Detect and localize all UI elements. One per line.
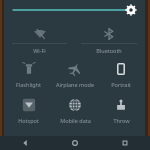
- staticText: Bluetooth: [96, 47, 122, 54]
- button[interactable]: Throw: [98, 93, 144, 129]
- button[interactable]: Wi-Fi: [5, 24, 74, 57]
- staticText: Portrait: [111, 81, 131, 88]
- staticText: Flashlight: [16, 81, 41, 88]
- staticText: Throw: [113, 117, 130, 124]
- button[interactable]: Mobile data: [52, 93, 98, 129]
- button[interactable]: Airplane mode: [52, 57, 98, 93]
- button[interactable]: Brightness: [5, 0, 144, 20]
- button[interactable]: Recent apps: [100, 136, 150, 150]
- button[interactable]: Bluetooth: [74, 24, 144, 57]
- button[interactable]: Portrait: [98, 57, 144, 93]
- button[interactable]: Hotspot: [5, 93, 52, 129]
- button[interactable]: Back: [0, 136, 50, 150]
- staticText: Mobile data: [60, 117, 91, 124]
- button[interactable]: Flashlight: [5, 57, 52, 93]
- staticText: Wi-Fi: [33, 47, 46, 54]
- staticText: Hotspot: [18, 117, 39, 124]
- staticText: Airplane mode: [56, 81, 94, 88]
- button[interactable]: Home: [50, 136, 100, 150]
